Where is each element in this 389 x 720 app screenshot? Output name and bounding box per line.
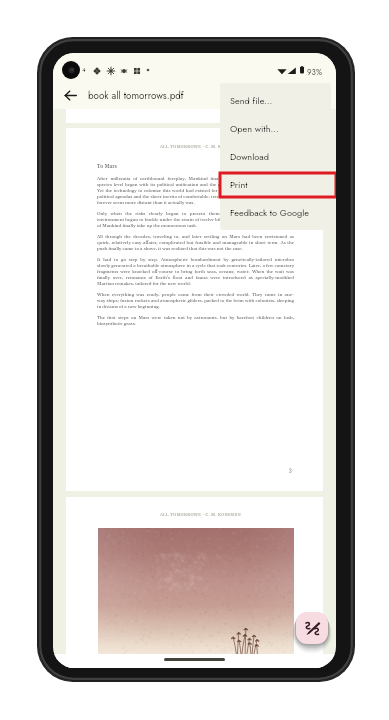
- staticText: Send file...: [230, 94, 273, 107]
- button[interactable]: Print: [220, 170, 331, 198]
- staticText: It had to go step by step. Atmospheric b…: [97, 257, 294, 287]
- staticText: book all tomorrows.pdf: [88, 89, 184, 103]
- staticText: To Mars: [97, 163, 117, 170]
- button[interactable]: Feedback to Google: [220, 198, 331, 226]
- button[interactable]: Download: [220, 142, 331, 170]
- button[interactable]: Back: [57, 82, 83, 109]
- staticText: Print: [230, 178, 248, 191]
- staticText: 93%: [307, 66, 322, 78]
- button[interactable]: Open with...: [220, 114, 331, 142]
- staticText: 4: [82, 66, 86, 75]
- staticText: After millennia of earthbound foreplay, …: [97, 176, 294, 206]
- staticText: ALL TOMORROWS - C. M. KOSEMEN: [160, 144, 242, 149]
- staticText: The first steps on Mars were taken not b…: [97, 315, 294, 327]
- button[interactable]: Send file...: [220, 86, 331, 114]
- staticText: Feedback to Google: [230, 206, 310, 219]
- staticText: Open with...: [230, 122, 279, 135]
- staticText: When everything was ready, people came f…: [97, 292, 294, 310]
- staticText: 3: [289, 468, 292, 474]
- button[interactable]: Annotate: [296, 612, 328, 644]
- staticText: Download: [230, 150, 269, 163]
- staticText: ALL TOMORROWS - C. M. KOSEMEN: [160, 512, 242, 517]
- staticText: All through the decades, traveling to, a…: [97, 234, 294, 252]
- staticText: Only when the risks clearly began to pre…: [97, 211, 294, 229]
